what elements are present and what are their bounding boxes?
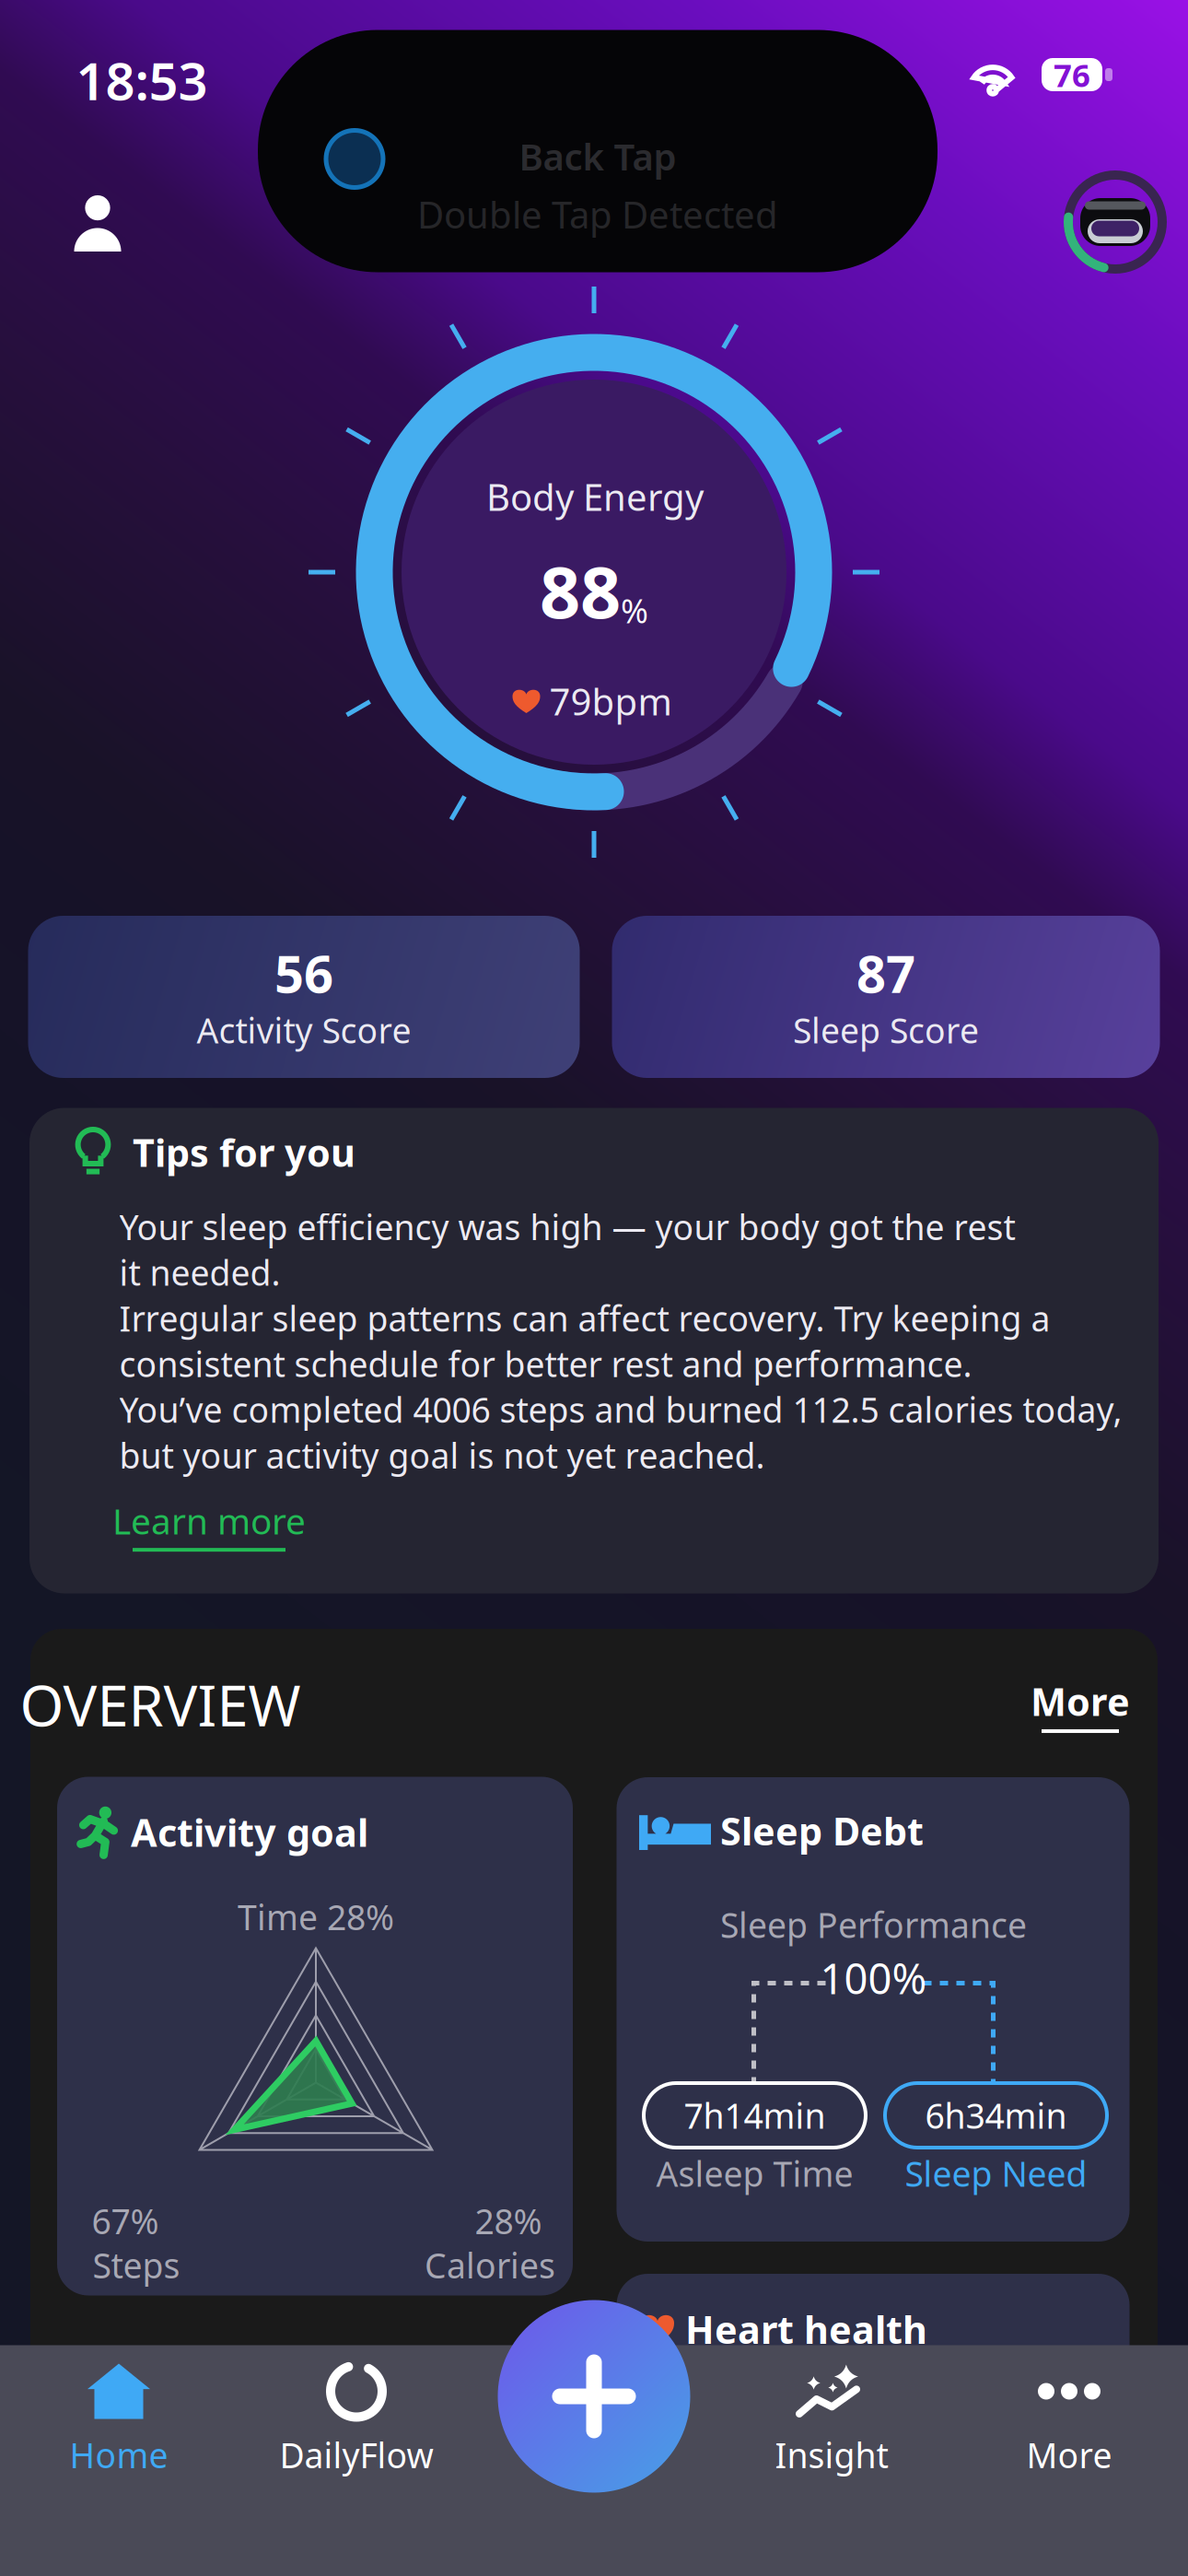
button[interactable] <box>475 2345 713 2576</box>
staticText: Sleep Debt <box>720 1805 924 1856</box>
staticText: 76 <box>1054 53 1090 96</box>
staticText: 56 <box>274 939 333 1007</box>
staticText: Your sleep efficiency was high — your bo… <box>119 1204 1015 1250</box>
button[interactable]: More <box>950 2345 1188 2576</box>
staticText: Insight <box>775 2432 888 2478</box>
button[interactable]: More <box>1031 1676 1130 1733</box>
staticText: 18:53 <box>76 46 208 114</box>
staticText: More <box>1026 2432 1112 2478</box>
staticText: You’ve completed 4006 steps and burned 1… <box>119 1387 1122 1432</box>
staticText: Back Tap <box>519 132 676 181</box>
staticText: Body Energy <box>486 472 704 521</box>
staticText: 7h14min <box>684 2092 826 2138</box>
staticText: 87 <box>856 939 915 1007</box>
button[interactable]: Profile <box>71 194 124 252</box>
staticText: More <box>1031 1676 1130 1727</box>
staticText: Asleep Time <box>656 2151 853 2196</box>
staticText: Activity goal <box>131 1807 368 1857</box>
staticText: Irregular sleep patterns can affect reco… <box>119 1295 1050 1341</box>
button[interactable]: Home <box>0 2345 238 2576</box>
staticText: it needed. <box>119 1250 280 1295</box>
staticText: Sleep Need <box>905 2151 1087 2196</box>
staticText: 88 <box>540 543 621 638</box>
button[interactable]: DailyFlow <box>238 2345 475 2576</box>
staticText: 79bpm <box>549 677 672 726</box>
button[interactable]: 87 <box>612 916 1160 1078</box>
staticText: but your activity goal is not yet reache… <box>119 1432 765 1478</box>
staticText: OVERVIEW <box>20 1667 301 1742</box>
button[interactable]: Insight <box>713 2345 950 2576</box>
staticText: Sleep Score <box>793 1007 979 1053</box>
staticText: Heart health <box>685 2304 927 2354</box>
staticText: Learn more <box>112 1497 306 1544</box>
staticText: 6h34min <box>925 2092 1067 2138</box>
staticText: Activity Score <box>197 1007 411 1053</box>
button[interactable]: Add <box>498 2300 690 2493</box>
staticText: consistent schedule for better rest and … <box>119 1341 972 1387</box>
staticText: Double Tap Detected <box>417 190 778 239</box>
staticText: Tips for you <box>133 1127 355 1177</box>
staticText: Steps <box>93 2242 180 2288</box>
staticText: 67% <box>92 2198 159 2244</box>
staticText: 28% <box>475 2198 542 2244</box>
button[interactable]: Learn more <box>112 1497 306 1552</box>
button[interactable]: Ring device <box>1062 169 1169 275</box>
staticText: Sleep Performance <box>720 1902 1027 1947</box>
staticText: % <box>621 588 648 632</box>
button[interactable]: 56 <box>28 916 580 1078</box>
staticText: Calories <box>425 2242 555 2288</box>
staticText: 100% <box>820 1950 927 2006</box>
staticText: Time 28% <box>238 1894 394 1940</box>
staticText: Home <box>70 2432 168 2478</box>
staticText: DailyFlow <box>280 2432 433 2478</box>
